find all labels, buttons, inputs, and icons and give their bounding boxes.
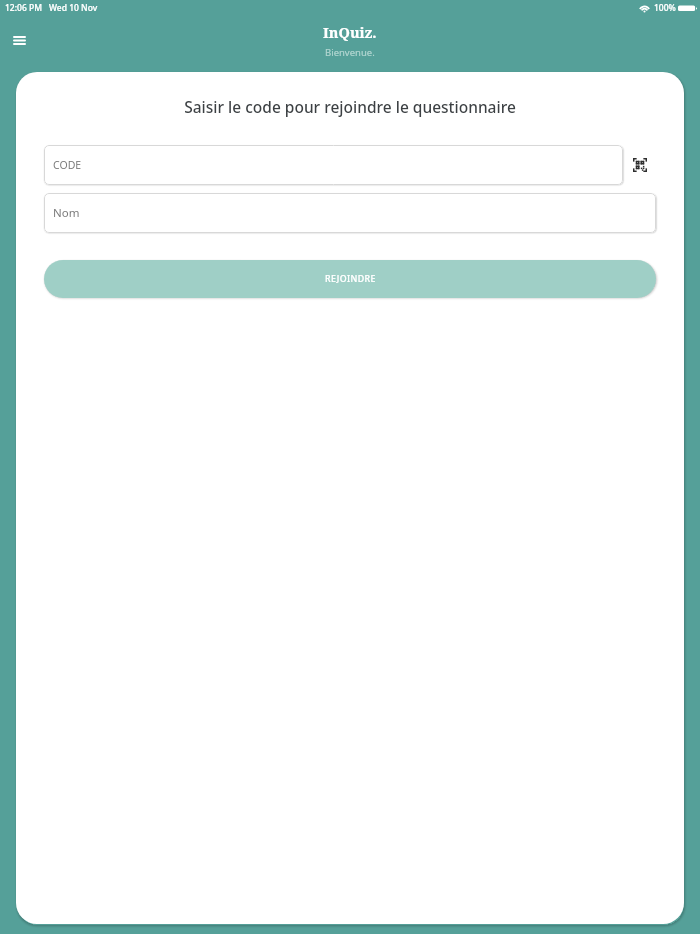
button[interactable]: REJOINDRE	[44, 260, 656, 298]
staticText: InQuiz.	[323, 22, 377, 42]
button[interactable]: CODE	[44, 145, 623, 185]
staticText: Bienvenue.	[325, 46, 375, 59]
staticText: REJOINDRE	[325, 273, 376, 285]
button[interactable]: Menu	[0, 21, 39, 60]
button[interactable]: Scan QR code	[623, 145, 656, 185]
staticText: Saisir le code pour rejoindre le questio…	[16, 96, 684, 117]
staticText: 12:06 PM	[5, 2, 42, 14]
staticText: CODE	[53, 158, 82, 172]
staticText: 100%	[654, 2, 676, 14]
staticText: Wed 10 Nov	[49, 2, 98, 14]
staticText: Nom	[53, 205, 80, 221]
button[interactable]: Nom	[44, 193, 656, 233]
